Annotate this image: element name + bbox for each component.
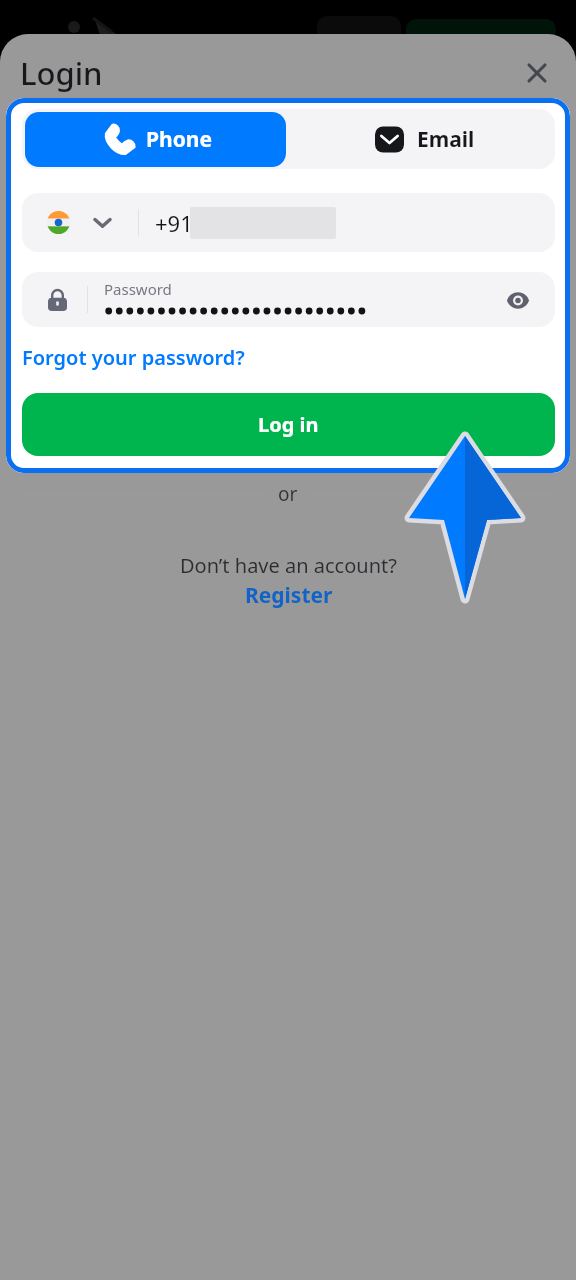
staticText: or	[278, 481, 298, 507]
button[interactable]: Show password	[496, 278, 540, 322]
button[interactable]: Log in	[22, 393, 555, 456]
button[interactable]: Register	[245, 581, 333, 610]
staticText: Login	[20, 52, 103, 94]
button[interactable]: Email	[286, 109, 555, 169]
button[interactable]: +91	[22, 193, 555, 252]
staticText: Register	[245, 581, 333, 610]
button[interactable]: Forgot your password?	[22, 343, 245, 371]
staticText: Email	[417, 125, 475, 154]
staticText: Password	[104, 279, 172, 299]
staticText: Log in	[258, 411, 319, 438]
button[interactable]: Password	[22, 272, 555, 327]
staticText: Don’t have an account?	[180, 552, 397, 579]
staticText: Forgot your password?	[22, 344, 245, 371]
button[interactable]: Close	[517, 53, 557, 93]
button[interactable]: Phone	[25, 112, 286, 167]
staticText: +91	[155, 208, 193, 238]
staticText: Phone	[146, 125, 213, 154]
